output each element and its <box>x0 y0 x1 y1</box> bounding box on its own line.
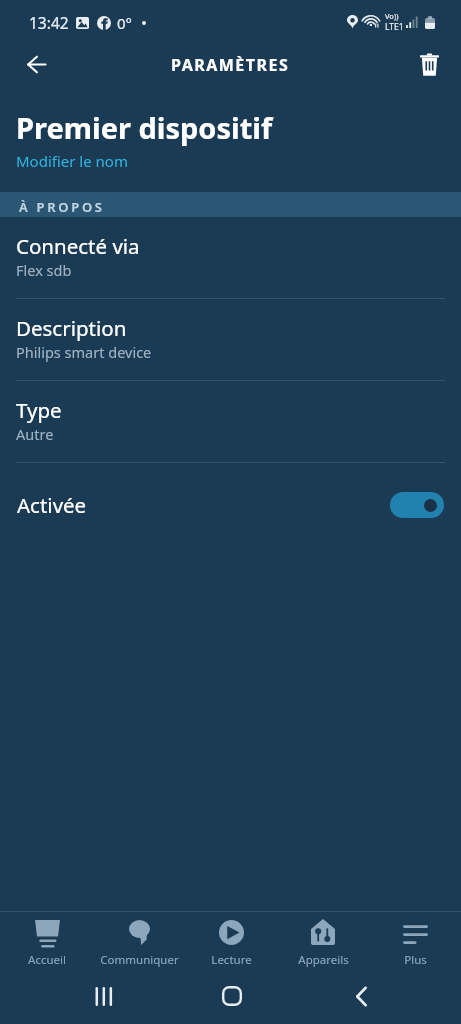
staticText: 13:42 <box>29 12 69 33</box>
button[interactable]: Delete <box>407 42 451 86</box>
button[interactable]: Home <box>208 974 256 1018</box>
button[interactable]: Back <box>337 974 385 1018</box>
button[interactable]: Modifier le nom <box>16 151 128 171</box>
button[interactable]: Communiquer <box>93 912 185 974</box>
button[interactable]: Type <box>0 381 461 463</box>
button[interactable]: Appareils <box>277 912 369 974</box>
button[interactable]: Lecture <box>185 912 277 974</box>
staticText: Accueil <box>28 952 66 968</box>
staticText: Vo)) <box>385 11 399 21</box>
staticText: Description <box>16 314 127 342</box>
staticText: Connecté via <box>16 232 140 260</box>
staticText: Plus <box>404 952 427 968</box>
button[interactable]: Activée <box>0 463 461 547</box>
button[interactable]: Description <box>0 299 461 381</box>
staticText: Lecture <box>211 952 252 968</box>
staticText: Premier dispositif <box>16 108 273 147</box>
staticText: Appareils <box>298 952 349 968</box>
button[interactable]: Recent apps <box>79 974 127 1018</box>
staticText: À PROPOS <box>19 198 105 216</box>
button[interactable]: Connecté via <box>0 217 461 299</box>
staticText: Flex sdb <box>16 260 72 280</box>
staticText: 0° <box>117 13 133 33</box>
button[interactable]: Back <box>12 42 60 86</box>
button[interactable]: Plus <box>369 912 461 974</box>
staticText: Modifier le nom <box>16 151 128 171</box>
staticText: PARAMÈTRES <box>171 54 290 76</box>
staticText: Type <box>16 396 62 424</box>
staticText: Autre <box>16 424 54 444</box>
staticText: Philips smart device <box>16 342 152 362</box>
staticText: Communiquer <box>100 952 179 968</box>
button[interactable]: Accueil <box>0 912 93 974</box>
staticText: Activée <box>17 491 87 519</box>
staticText: LTE1 <box>385 21 404 33</box>
